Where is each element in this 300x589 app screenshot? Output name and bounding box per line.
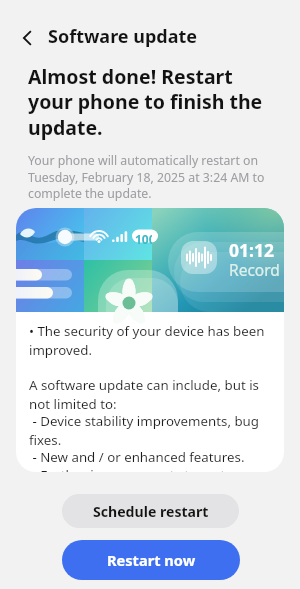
staticText: • The security of your device has been i… [29, 322, 277, 358]
staticText: - Device stability improvements, bug fix… [29, 412, 277, 448]
button[interactable]: Schedule restart [62, 494, 239, 528]
button[interactable]: Restart now [62, 540, 240, 580]
staticText: 01:12 [229, 238, 274, 262]
staticText: A software update can include, but is no… [29, 376, 277, 412]
staticText: Software update [48, 24, 198, 49]
staticText: - Further improvements to system stabili… [29, 466, 277, 472]
staticText: Record [229, 259, 280, 280]
staticText: 100 [135, 231, 152, 247]
staticText: - New and / or enhanced features. [29, 448, 245, 466]
staticText: Schedule restart [93, 502, 209, 521]
button[interactable]: Back [5, 12, 49, 60]
staticText: Restart now [107, 550, 196, 570]
staticText: Almost done! Restart your phone to finis… [28, 63, 264, 141]
staticText: Your phone will automatically restart on… [28, 152, 276, 201]
